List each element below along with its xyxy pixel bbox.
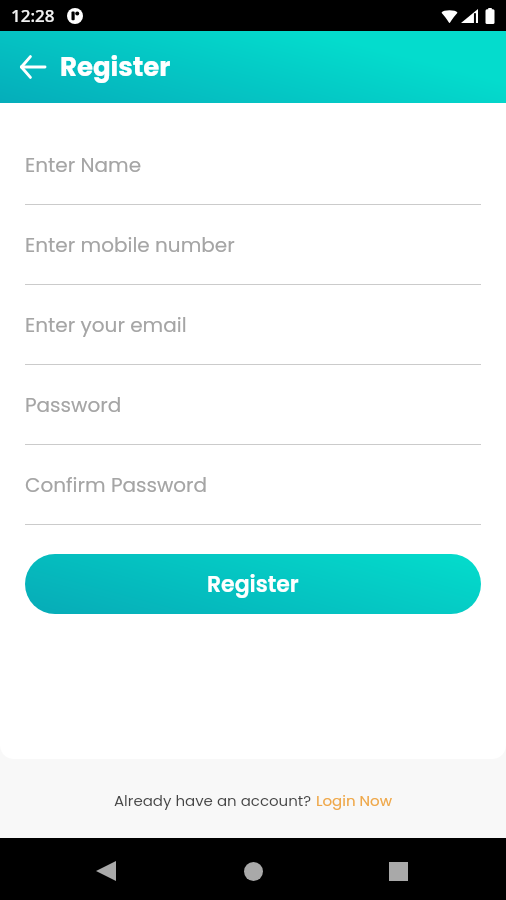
staticText: Enter your email	[25, 311, 187, 339]
button[interactable]: Back	[82, 847, 130, 895]
staticText: Register	[60, 49, 171, 85]
staticText: Enter Name	[25, 151, 142, 179]
button[interactable]: Home	[229, 847, 277, 895]
button[interactable]: Enter mobile number	[25, 205, 481, 285]
staticText: Password	[25, 391, 122, 419]
button[interactable]: Password	[25, 365, 481, 445]
button[interactable]: Confirm Password	[25, 445, 481, 525]
button[interactable]: Enter Name	[25, 125, 481, 205]
button[interactable]: Recent apps	[374, 847, 422, 895]
staticText: Confirm Password	[25, 471, 208, 499]
staticText: Enter mobile number	[25, 231, 235, 259]
staticText: 12:28	[11, 4, 55, 27]
staticText: Login Now	[316, 790, 392, 811]
button[interactable]: Register	[25, 554, 481, 614]
button[interactable]: Back	[20, 54, 46, 80]
button[interactable]: Login Now	[316, 790, 392, 811]
staticText: Register	[207, 569, 299, 600]
staticText: Already have an account?	[114, 790, 316, 811]
button[interactable]: Enter your email	[25, 285, 481, 365]
